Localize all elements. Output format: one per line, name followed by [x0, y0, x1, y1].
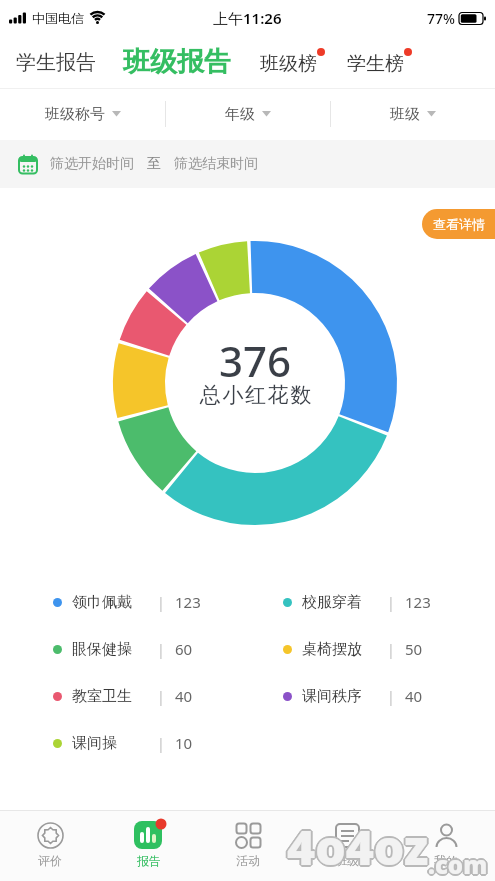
- button[interactable]: 班级报告: [123, 45, 231, 79]
- staticText: 查看详情: [433, 216, 485, 232]
- staticText: 总小红花数: [199, 382, 312, 408]
- button[interactable]: 教室卫生: [53, 684, 193, 708]
- button[interactable]: 班级榜: [260, 48, 325, 76]
- button[interactable]: 年级: [165, 88, 330, 140]
- staticText: .com: [429, 847, 489, 880]
- staticText: .com: [428, 848, 488, 881]
- button[interactable]: 班级: [297, 811, 396, 881]
- staticText: 报告: [137, 853, 161, 868]
- button[interactable]: 领巾佩戴: [53, 590, 201, 614]
- button[interactable]: 眼保健操: [53, 637, 193, 661]
- staticText: 40: [175, 686, 193, 706]
- staticText: 50: [405, 639, 423, 659]
- staticText: 学生报告: [16, 50, 96, 75]
- staticText: 评价: [38, 853, 62, 868]
- staticText: .com: [429, 849, 489, 881]
- staticText: .com: [427, 847, 487, 880]
- button[interactable]: 课间秩序: [283, 684, 423, 708]
- staticText: 筛选开始时间: [50, 155, 134, 173]
- staticText: 校服穿着: [302, 593, 362, 612]
- staticText: 班级报告: [123, 45, 231, 79]
- button[interactable]: 评价: [0, 811, 99, 881]
- staticText: 60: [175, 639, 193, 659]
- staticText: 领巾佩戴: [72, 593, 132, 612]
- staticText: 4o4oz: [289, 814, 431, 879]
- staticText: 我的: [434, 853, 458, 868]
- staticText: 上午11:26: [213, 8, 282, 28]
- button[interactable]: 筛选开始时间: [18, 140, 495, 188]
- staticText: |: [387, 593, 395, 612]
- button[interactable]: 报告: [99, 811, 198, 881]
- staticText: 筛选结束时间: [174, 155, 258, 173]
- staticText: 4o4oz: [285, 814, 427, 879]
- button[interactable]: 班级: [330, 88, 495, 140]
- staticText: 10: [175, 733, 193, 753]
- staticText: |: [157, 734, 165, 753]
- button[interactable]: 活动: [198, 811, 297, 881]
- button[interactable]: 查看详情: [422, 209, 495, 239]
- button[interactable]: 我的: [396, 811, 495, 881]
- staticText: 至: [147, 155, 161, 173]
- staticText: 活动: [236, 853, 260, 868]
- staticText: 课间操: [72, 734, 117, 753]
- staticText: |: [157, 593, 165, 612]
- staticText: .com: [428, 850, 488, 881]
- staticText: |: [387, 640, 395, 659]
- staticText: .com: [428, 846, 488, 879]
- staticText: 班级称号: [45, 105, 105, 124]
- button[interactable]: 学生报告: [16, 50, 96, 75]
- staticText: 眼保健操: [72, 640, 132, 659]
- staticText: 40: [405, 686, 423, 706]
- button[interactable]: 学生榜: [347, 48, 412, 76]
- button[interactable]: 课间操: [53, 731, 193, 755]
- button[interactable]: 班级称号: [0, 88, 165, 140]
- staticText: 4o4oz: [287, 812, 429, 877]
- staticText: 中国电信: [32, 10, 84, 26]
- staticText: 123: [175, 592, 201, 612]
- staticText: |: [387, 687, 395, 706]
- button[interactable]: 校服穿着: [283, 590, 431, 614]
- staticText: 123: [405, 592, 431, 612]
- staticText: .com: [426, 848, 486, 881]
- staticText: 4o4oz: [286, 815, 428, 880]
- staticText: 4o4oz: [287, 816, 429, 881]
- staticText: 班级榜: [260, 52, 317, 76]
- staticText: 4o4oz: [286, 813, 428, 878]
- staticText: 年级: [225, 105, 255, 124]
- staticText: 教室卫生: [72, 687, 132, 706]
- staticText: 376: [219, 332, 292, 389]
- staticText: 4o4oz: [287, 814, 429, 879]
- staticText: 77%: [427, 9, 455, 28]
- staticText: .com: [430, 848, 490, 881]
- staticText: 课间秩序: [302, 687, 362, 706]
- staticText: |: [157, 640, 165, 659]
- staticText: 4o4oz: [288, 813, 430, 878]
- staticText: .com: [427, 849, 487, 881]
- staticText: 班级: [335, 853, 359, 868]
- staticText: 4o4oz: [288, 815, 430, 880]
- staticText: 学生榜: [347, 52, 404, 76]
- staticText: 桌椅摆放: [302, 640, 362, 659]
- staticText: |: [157, 687, 165, 706]
- staticText: 班级: [390, 105, 420, 124]
- button[interactable]: 桌椅摆放: [283, 637, 423, 661]
